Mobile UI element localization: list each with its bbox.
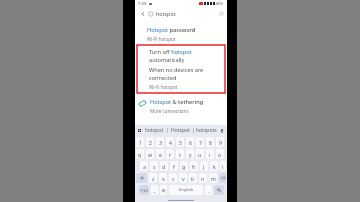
button[interactable]: w <box>146 149 154 159</box>
button[interactable]: t <box>176 149 184 159</box>
staticText: q <box>138 151 142 158</box>
button[interactable]: y <box>186 149 194 159</box>
button[interactable]: c <box>169 173 177 183</box>
button[interactable]: h <box>190 161 198 171</box>
staticText: 1 <box>139 139 142 146</box>
button[interactable]: m <box>209 173 217 183</box>
button[interactable]: hotspot <box>142 125 167 136</box>
staticText: When no devices are connected <box>149 66 221 82</box>
staticText: Turn off hotspot automatically <box>149 48 221 64</box>
staticText: 7 <box>199 139 202 146</box>
button[interactable]: 8 <box>206 137 214 147</box>
staticText: . <box>208 187 210 194</box>
button[interactable]: l <box>220 161 226 171</box>
button[interactable]: k <box>210 161 218 171</box>
button[interactable]: i <box>206 149 214 159</box>
staticText: , <box>154 187 156 194</box>
staticText: l <box>222 163 224 170</box>
staticText: n <box>201 175 205 182</box>
button[interactable]: 2 <box>146 137 154 147</box>
button[interactable]: b <box>189 173 197 183</box>
staticText: o <box>218 151 222 158</box>
staticText: f <box>173 163 175 170</box>
staticText: 5 <box>179 139 182 146</box>
button[interactable]: Toolbar <box>137 128 142 133</box>
staticText: 3 <box>159 139 162 146</box>
staticText: 7:09 <box>138 1 147 7</box>
staticText: c <box>172 175 175 182</box>
staticText: 8 <box>209 139 212 146</box>
staticText: k <box>213 163 216 170</box>
staticText: hotspot <box>156 10 219 17</box>
button[interactable]: q <box>136 149 144 159</box>
button[interactable]: Hotspot password <box>135 23 227 45</box>
button[interactable]: f <box>170 161 178 171</box>
staticText: r <box>169 151 172 158</box>
staticText: English <box>179 187 194 193</box>
staticText: Wi-Fi hotspot <box>149 84 178 90</box>
button[interactable]: j <box>200 161 208 171</box>
staticText: h <box>192 163 196 170</box>
button[interactable]: s <box>150 161 158 171</box>
button[interactable]: 1 <box>136 137 144 147</box>
staticText: v <box>182 175 185 182</box>
button[interactable]: Key <box>219 173 226 183</box>
button[interactable]: u <box>196 149 204 159</box>
staticText: 2 <box>149 139 152 146</box>
button[interactable]: a <box>140 161 148 171</box>
staticText: hotspot <box>145 127 164 134</box>
staticText: 86% <box>216 1 224 6</box>
button[interactable]: 3 <box>156 137 164 147</box>
staticText: j <box>203 163 205 170</box>
button[interactable]: 6 <box>186 137 194 147</box>
button[interactable]: 4 <box>166 137 174 147</box>
button[interactable]: r <box>166 149 174 159</box>
button[interactable]: Back <box>138 9 147 18</box>
staticText: Hotspot & tethering <box>150 98 204 106</box>
staticText: b <box>191 175 195 182</box>
staticText: Wi-Fi hotspot <box>147 36 176 42</box>
staticText: Hotspot password <box>147 26 196 34</box>
button[interactable]: e <box>156 149 164 159</box>
staticText: u <box>198 151 202 158</box>
staticText: a <box>143 163 146 170</box>
staticText: w <box>148 151 153 158</box>
button[interactable]: . <box>205 185 212 195</box>
staticText: i <box>209 151 211 158</box>
button[interactable]: v <box>179 173 187 183</box>
staticText: Hotspot <box>171 127 190 134</box>
button[interactable]: Hotspot & tethering <box>135 95 227 117</box>
button[interactable]: n <box>199 173 207 183</box>
staticText: d <box>162 163 166 170</box>
button[interactable]: English <box>169 185 203 195</box>
staticText: x <box>162 175 165 182</box>
staticText: t <box>179 151 181 158</box>
staticText: 9 <box>219 139 222 146</box>
staticText: z <box>152 175 155 182</box>
staticText: More connections <box>150 108 189 114</box>
button[interactable]: x <box>159 173 167 183</box>
staticText: ?123 <box>140 188 149 193</box>
staticText: hotspots <box>196 127 217 134</box>
button[interactable]: 5 <box>176 137 184 147</box>
button[interactable]: Key <box>160 185 167 195</box>
button[interactable]: Turn off hotspot automatically <box>137 45 225 93</box>
button[interactable]: Hotspot <box>168 125 193 136</box>
button[interactable]: 7 <box>196 137 204 147</box>
button[interactable]: Key <box>136 173 147 183</box>
button[interactable]: , <box>151 185 158 195</box>
staticText: s <box>153 163 156 170</box>
button[interactable]: d <box>160 161 168 171</box>
button[interactable]: o <box>216 149 224 159</box>
button[interactable]: ?123 <box>139 185 149 195</box>
button[interactable]: g <box>180 161 188 171</box>
button[interactable]: Voice input <box>219 128 225 134</box>
button[interactable]: Key <box>214 185 224 195</box>
button[interactable]: Account <box>219 11 224 16</box>
button[interactable]: 9 <box>216 137 224 147</box>
button[interactable]: hotspots <box>194 125 219 136</box>
staticText: 6 <box>189 139 192 146</box>
button[interactable]: z <box>149 173 157 183</box>
staticText: e <box>159 151 162 158</box>
